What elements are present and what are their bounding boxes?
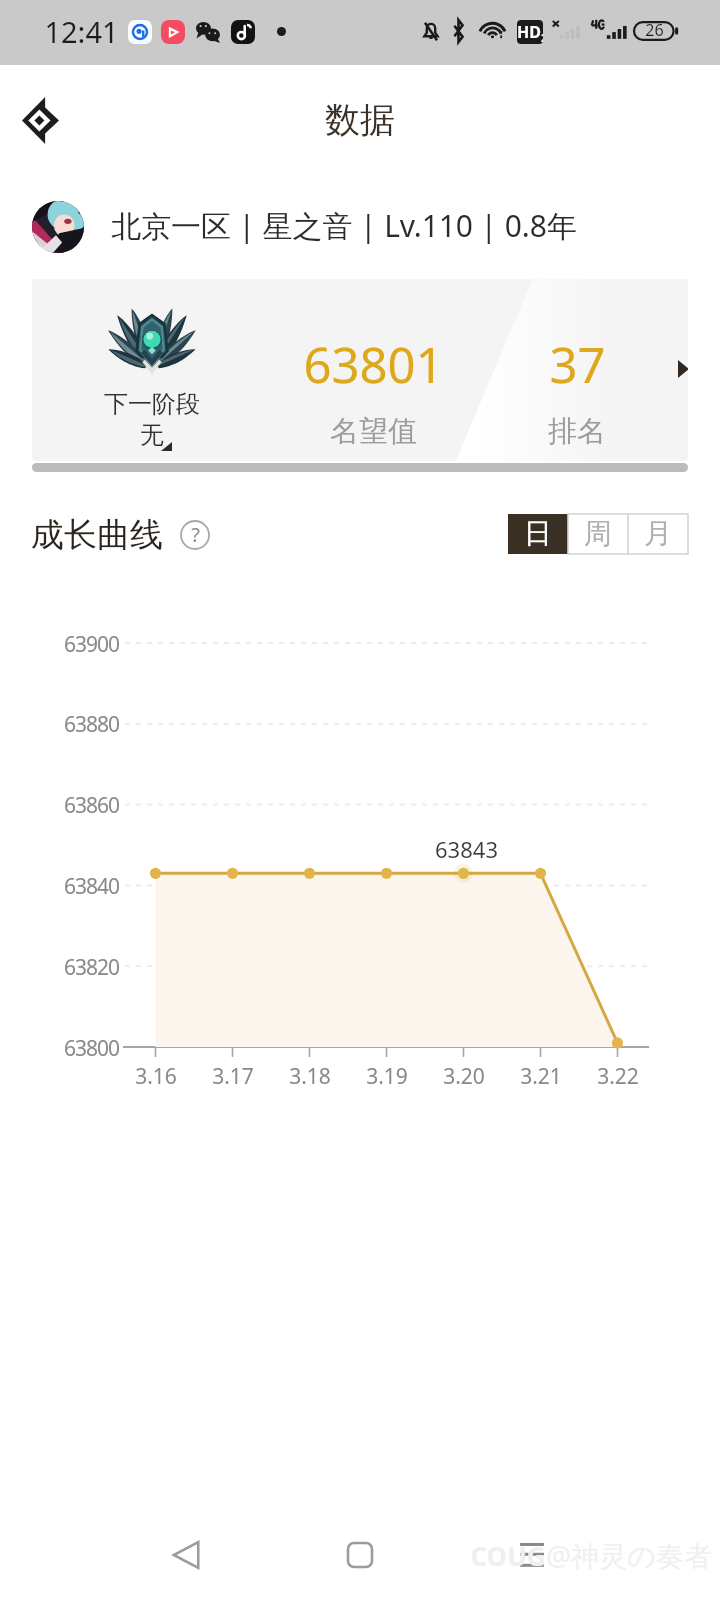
staticText: 3.18 bbox=[289, 1062, 331, 1091]
staticText: 37 bbox=[549, 331, 606, 398]
staticText: 名望值 bbox=[330, 413, 417, 450]
staticText: 63860 bbox=[63, 791, 119, 820]
staticText: 周 bbox=[584, 516, 612, 551]
button[interactable]: 北京一区 | 星之音 | Lv.110 | 0.8年 bbox=[0, 196, 720, 258]
staticText: 63801 bbox=[303, 331, 444, 398]
button[interactable]: Help bbox=[178, 518, 212, 552]
staticText: 3.21 bbox=[520, 1062, 562, 1091]
staticText: 2 bbox=[541, 31, 543, 44]
button[interactable]: Menu bbox=[12, 92, 68, 148]
staticText: 无 bbox=[140, 420, 164, 450]
staticText: ? bbox=[191, 521, 200, 548]
staticText: 63843 bbox=[435, 834, 498, 864]
staticText: 63880 bbox=[63, 710, 119, 739]
staticText: 3.16 bbox=[135, 1062, 177, 1091]
staticText: 日 bbox=[524, 516, 552, 551]
staticText: 月 bbox=[644, 516, 672, 551]
staticText: 26 bbox=[645, 19, 664, 41]
staticText: 12:41 bbox=[44, 12, 119, 51]
staticText: 成长曲线 bbox=[31, 514, 163, 556]
staticText: 3.22 bbox=[597, 1062, 639, 1091]
staticText: 63840 bbox=[63, 872, 119, 901]
button[interactable]: 周 bbox=[568, 514, 628, 554]
staticText: 63800 bbox=[63, 1034, 119, 1063]
staticText: @神灵の奏者 bbox=[546, 1536, 712, 1574]
button[interactable]: Recents bbox=[520, 1543, 544, 1567]
staticText: 3.19 bbox=[366, 1062, 408, 1091]
staticText: 排名 bbox=[548, 413, 606, 450]
button[interactable]: 日 bbox=[508, 514, 568, 554]
staticText: HD bbox=[517, 21, 541, 43]
button[interactable]: 下一阶段 bbox=[32, 279, 688, 461]
staticText: 数据 bbox=[325, 98, 395, 142]
staticText: 63900 bbox=[63, 630, 119, 659]
staticText: 北京一区 | 星之音 | Lv.110 | 0.8年 bbox=[111, 205, 577, 246]
button[interactable]: More details bbox=[656, 353, 688, 385]
staticText: 下一阶段 bbox=[104, 389, 200, 419]
staticText: 3.20 bbox=[443, 1062, 485, 1091]
staticText: COUG bbox=[470, 1538, 546, 1573]
button[interactable]: Back bbox=[169, 1538, 203, 1572]
button[interactable]: Home bbox=[348, 1543, 372, 1567]
staticText: 3.17 bbox=[212, 1062, 254, 1091]
button[interactable]: 月 bbox=[628, 514, 688, 554]
staticText: 63820 bbox=[63, 953, 119, 982]
